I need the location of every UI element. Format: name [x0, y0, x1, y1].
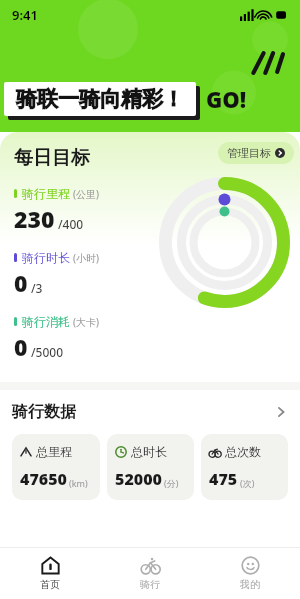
staticText: (次) — [240, 477, 255, 489]
staticText: 52000 — [115, 468, 162, 490]
staticText: (分) — [164, 477, 179, 489]
button[interactable]: 骑行 — [100, 547, 200, 599]
staticText: 骑行数据 — [12, 402, 76, 422]
staticText: (km) — [69, 477, 88, 489]
button[interactable]: 骑行数据 — [12, 402, 288, 422]
staticText: (小时) — [73, 251, 99, 265]
staticText: 0 — [14, 331, 28, 362]
staticText: /400 — [58, 216, 84, 232]
staticText: 每日目标 — [14, 146, 90, 170]
staticText: 骑行里程 — [22, 186, 70, 201]
staticText: 总次数 — [225, 444, 261, 459]
staticText: 首页 — [40, 578, 60, 591]
staticText: 骑行消耗 — [22, 314, 70, 329]
staticText: 骑行 — [140, 578, 160, 591]
staticText: /3 — [31, 280, 43, 296]
staticText: 475 — [209, 468, 238, 490]
staticText: 9:41 — [12, 6, 38, 24]
staticText: GO! — [206, 84, 247, 114]
staticText: 骑行时长 — [22, 250, 70, 265]
staticText: /5000 — [31, 344, 64, 360]
button[interactable]: 首页 — [0, 547, 100, 599]
staticText: 47650 — [20, 468, 67, 490]
staticText: 我的 — [240, 578, 260, 591]
staticText: 骑联一骑向精彩！ — [16, 86, 184, 112]
button[interactable]: 总里程 — [12, 434, 100, 500]
button[interactable]: 我的 — [200, 547, 300, 599]
staticText: (大卡) — [73, 315, 99, 329]
staticText: 0 — [14, 267, 28, 298]
staticText: 230 — [14, 203, 55, 234]
button[interactable]: 总时长 — [107, 434, 194, 500]
staticText: (公里) — [73, 187, 99, 201]
staticText: 管理目标 — [227, 146, 271, 160]
button[interactable]: 管理目标 — [218, 142, 294, 164]
staticText: 总里程 — [36, 444, 72, 459]
staticText: 总时长 — [131, 444, 167, 459]
button[interactable]: 总次数 — [201, 434, 288, 500]
